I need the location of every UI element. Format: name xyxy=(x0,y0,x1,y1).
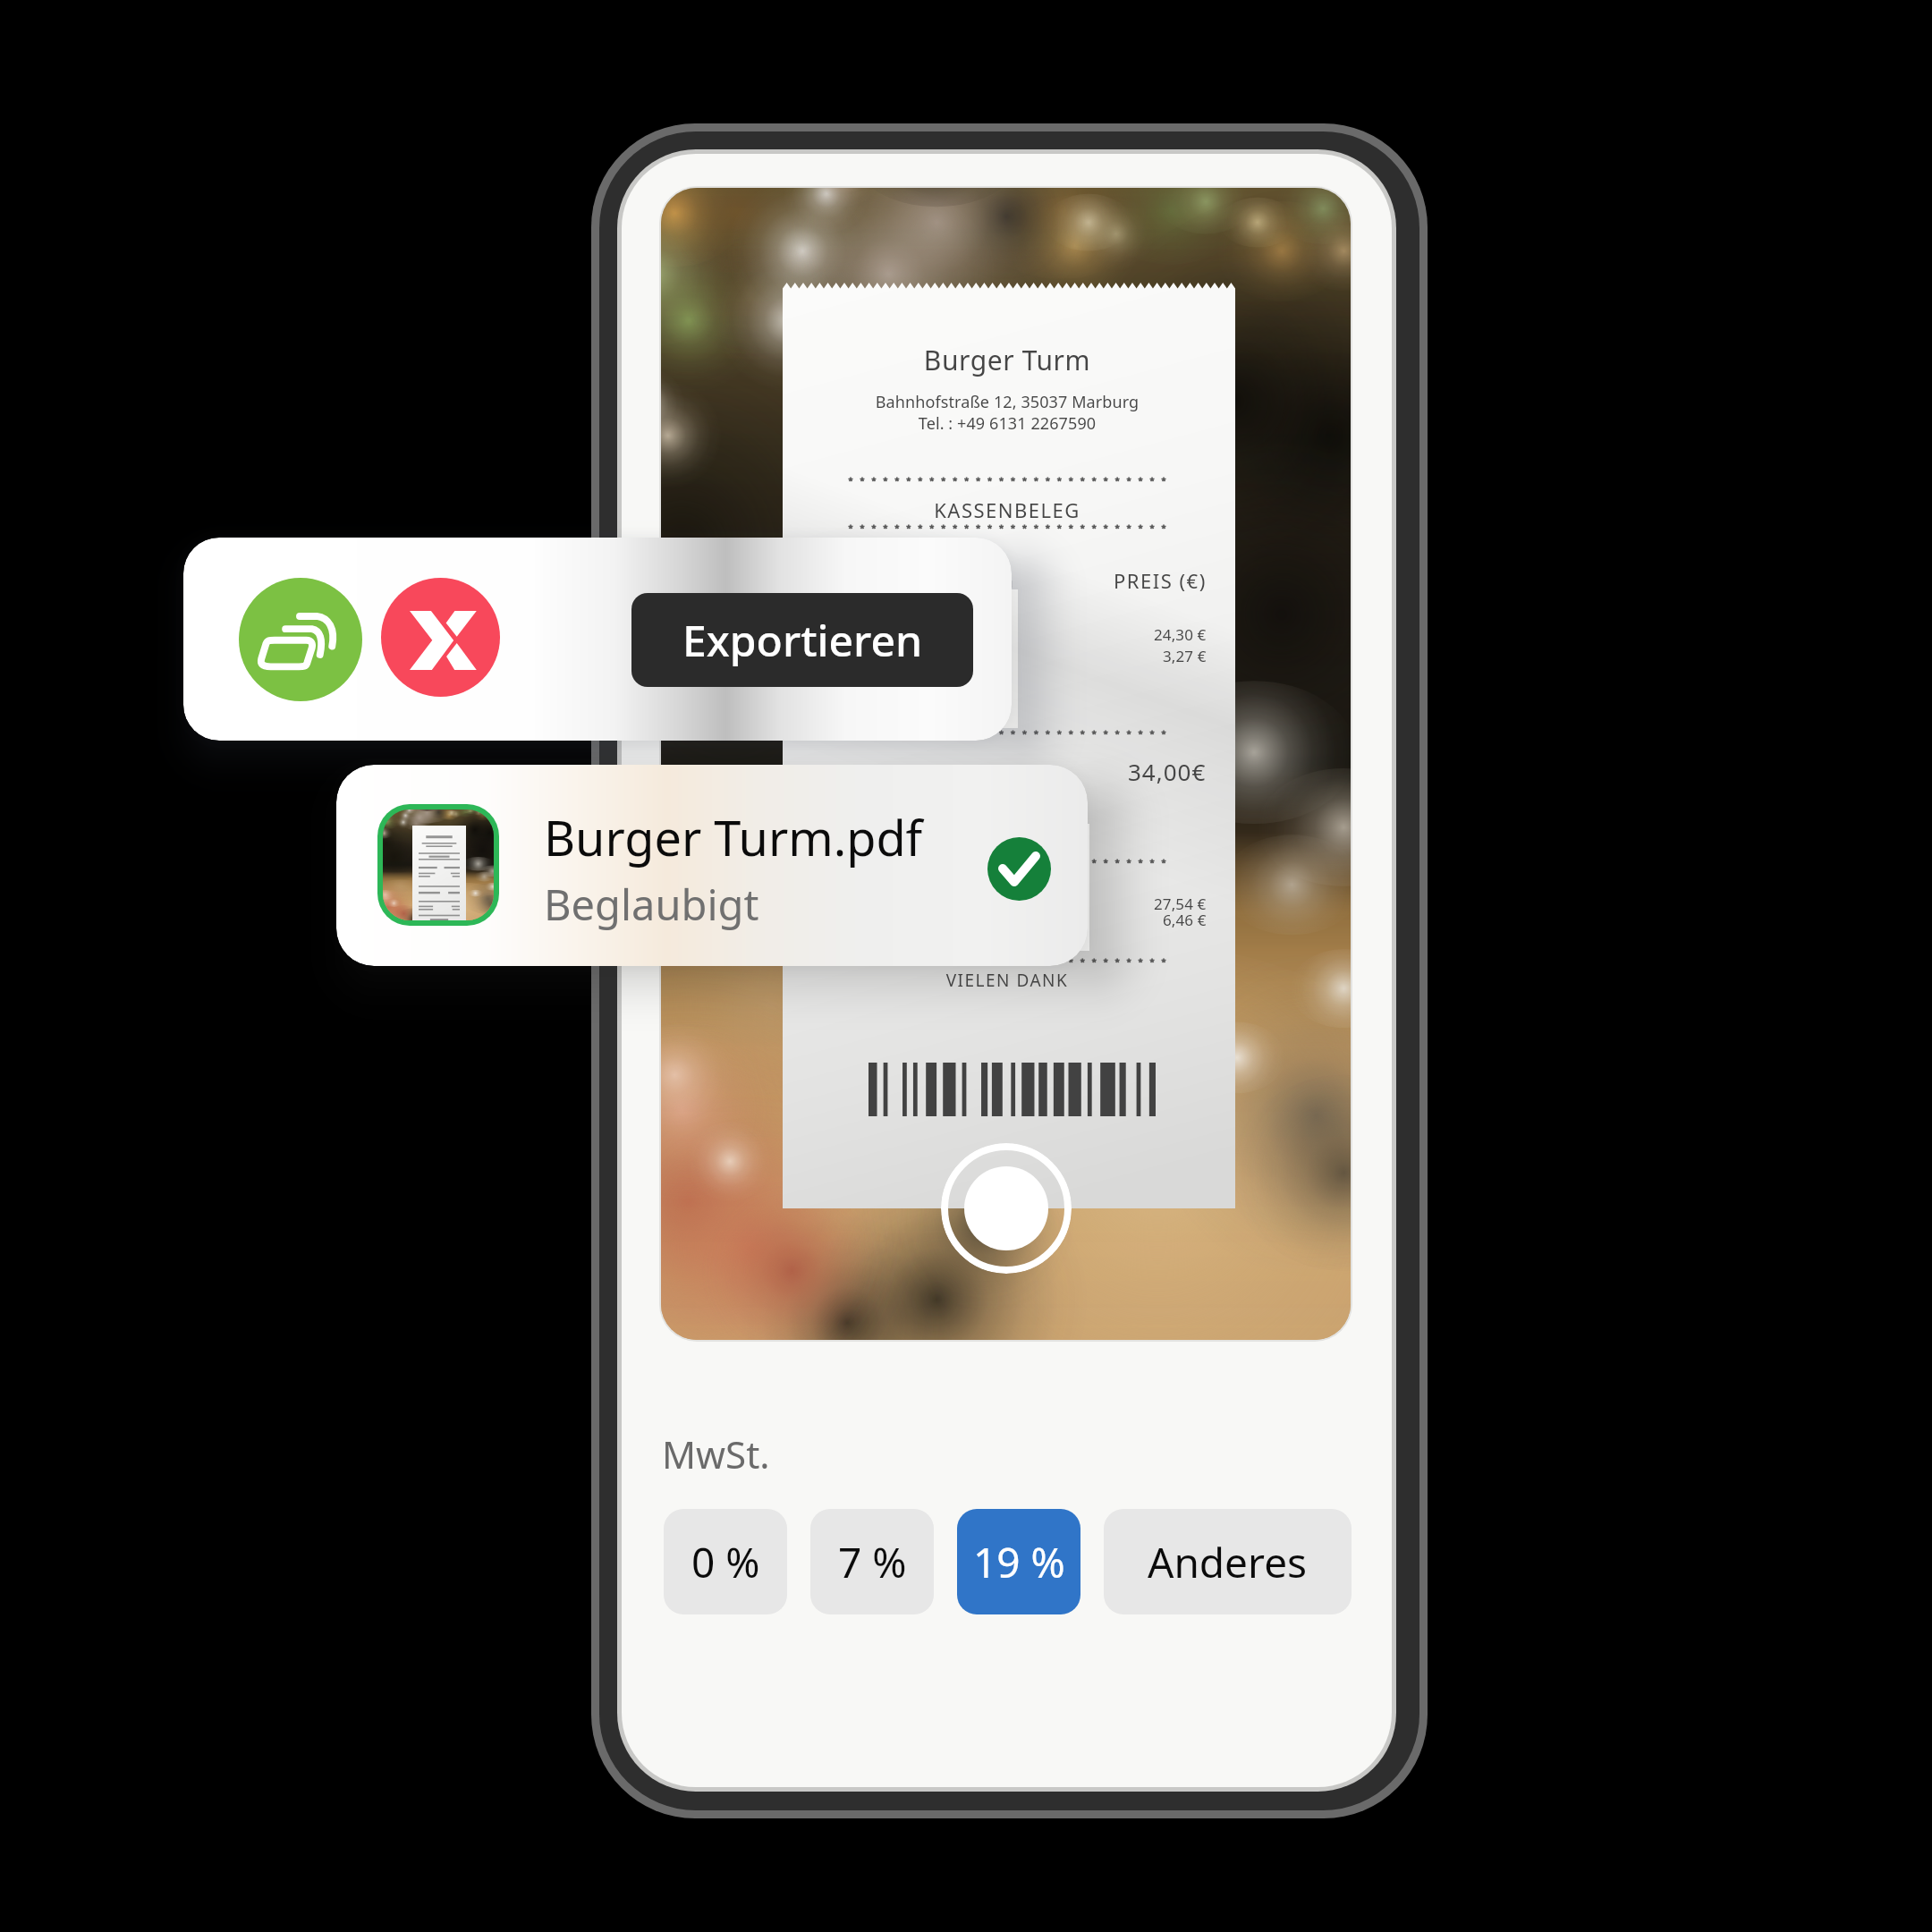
staticText: 34,00€ xyxy=(1128,756,1207,787)
staticText: 7 % xyxy=(838,1534,907,1590)
staticText: KASSENBELEG xyxy=(829,496,1185,523)
staticText: 27,54 € xyxy=(1154,894,1207,914)
button[interactable]: 7 % xyxy=(810,1509,934,1614)
button[interactable]: Exportieren xyxy=(631,593,973,687)
button[interactable]: Auslöser xyxy=(941,1143,1072,1274)
button[interactable]: Burger Turm.pdf xyxy=(336,765,1088,966)
staticText: Exportieren xyxy=(682,611,923,669)
staticText: Burger Turm.pdf xyxy=(544,804,923,870)
staticText: Tel. : +49 6131 2267590 xyxy=(829,412,1185,435)
staticText: 19 % xyxy=(973,1534,1065,1590)
staticText: 0 % xyxy=(691,1534,760,1590)
staticText: MwSt. xyxy=(662,1428,770,1479)
staticText: 2 x Rindergulasch xyxy=(851,624,979,645)
staticText: Bahnhofstraße 12, 35037 Marburg xyxy=(829,391,1185,413)
button[interactable]: 19 % xyxy=(957,1509,1080,1614)
button[interactable]: 0 % xyxy=(664,1509,787,1614)
button[interactable]: Excel Export xyxy=(381,578,500,697)
button[interactable]: Anderes xyxy=(1104,1509,1352,1614)
staticText: 24,30 € xyxy=(1154,624,1207,645)
staticText: 3 x Kaffee xyxy=(851,646,922,666)
staticText: 3,27 € xyxy=(1163,646,1207,666)
staticText: 6,46 € xyxy=(1163,910,1207,930)
staticText: VIELEN DANK xyxy=(829,969,1185,992)
staticText: BESCHREIBUNG xyxy=(851,567,1015,594)
button[interactable]: DATEV Export xyxy=(239,578,362,701)
staticText: Burger Turm xyxy=(829,342,1185,378)
staticText: PREIS (€) xyxy=(1114,567,1207,594)
staticText: Anderes xyxy=(1148,1534,1308,1590)
staticText: Beglaubigt xyxy=(544,876,759,933)
staticText: GESAMTSUMME xyxy=(851,756,1038,787)
